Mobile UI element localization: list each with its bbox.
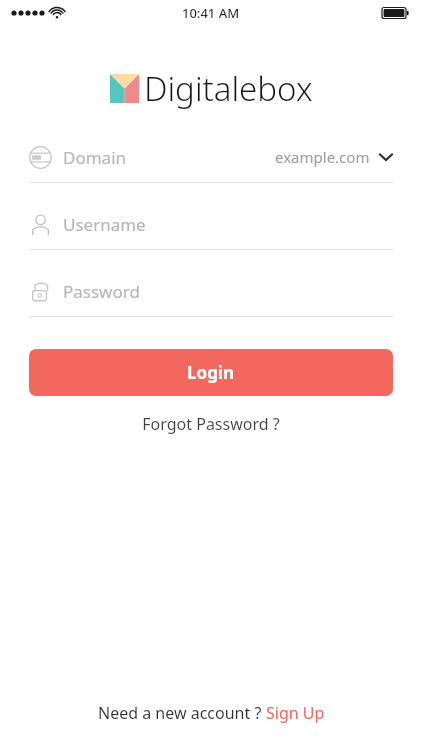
button[interactable]: Domain xyxy=(29,142,393,172)
staticText: Need a new account ? xyxy=(98,702,266,724)
button[interactable]: Login xyxy=(29,349,393,396)
staticText: Digitalebox xyxy=(144,66,313,111)
button[interactable]: Password xyxy=(29,276,393,306)
staticText: Forgot Password ? xyxy=(142,413,280,435)
button[interactable]: Forgot Password ? xyxy=(130,407,292,441)
staticText: Username xyxy=(63,213,146,236)
staticText: Sign Up xyxy=(266,702,325,724)
staticText: 10:41 AM xyxy=(182,4,240,22)
staticText: Password xyxy=(63,280,140,303)
staticText: example.com xyxy=(275,147,370,167)
button[interactable]: Username xyxy=(29,209,393,239)
staticText: Login xyxy=(187,361,235,384)
button[interactable]: Sign Up xyxy=(266,702,325,724)
staticText: Domain xyxy=(63,146,275,169)
